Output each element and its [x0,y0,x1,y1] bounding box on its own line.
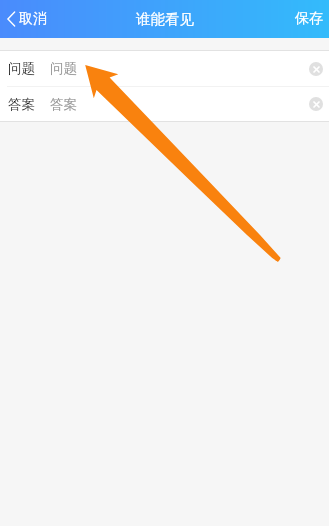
staticText: 问题 [50,60,78,77]
staticText: 谁能看见 [136,10,194,28]
button[interactable]: 保存 [289,4,329,34]
staticText: 答案 [50,96,78,113]
staticText: 答案 [8,96,36,113]
button[interactable]: 答案 [0,87,329,121]
button[interactable]: Clear text [309,97,323,111]
staticText: 问题 [8,60,36,77]
button[interactable]: Clear text [309,62,323,76]
staticText: 保存 [295,10,323,28]
button[interactable]: 取消 [5,4,49,34]
button[interactable]: 问题 [0,51,329,86]
staticText: 取消 [19,10,47,28]
